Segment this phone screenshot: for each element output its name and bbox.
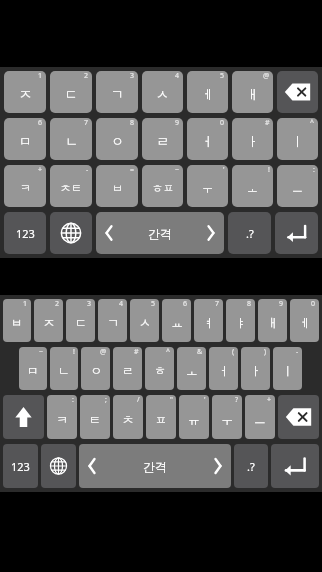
staticText: 3	[87, 299, 92, 309]
button[interactable]: !	[50, 347, 78, 390]
staticText: ㅗ	[247, 181, 258, 195]
staticText: #	[265, 118, 270, 128]
staticText: ㅎㅍ	[152, 181, 174, 195]
button[interactable]: "	[146, 395, 176, 439]
staticText: ㅅ	[139, 315, 151, 330]
staticText: !	[268, 165, 270, 175]
button[interactable]: .?	[228, 212, 271, 254]
button[interactable]: 2	[34, 299, 63, 342]
button[interactable]: !	[232, 165, 273, 207]
button[interactable]: ;	[80, 395, 110, 439]
staticText: ㄱ	[107, 315, 119, 330]
button[interactable]: =	[96, 165, 138, 207]
staticText: 1	[23, 299, 28, 309]
button[interactable]: 8	[226, 299, 255, 342]
staticText: '	[223, 165, 225, 175]
button[interactable]: 9	[142, 118, 183, 160]
button[interactable]: Enter	[271, 444, 319, 488]
button[interactable]: 5	[130, 299, 159, 342]
button[interactable]: ?	[212, 395, 242, 439]
button[interactable]: )	[241, 347, 270, 390]
staticText: ㅛ	[171, 315, 183, 330]
button[interactable]: 4	[142, 71, 183, 113]
staticText: ㅌ	[89, 412, 101, 427]
staticText: ㅏ	[246, 133, 259, 149]
staticText: 4	[119, 299, 124, 309]
staticText: ㅣ	[291, 133, 304, 149]
staticText: 9	[175, 118, 180, 128]
staticText: )	[264, 347, 267, 357]
staticText: 7	[215, 299, 220, 309]
button[interactable]: 1	[3, 299, 31, 342]
button[interactable]: 3	[96, 71, 138, 113]
button[interactable]: ^	[277, 118, 318, 160]
button[interactable]: -	[273, 347, 302, 390]
button[interactable]: -	[50, 165, 92, 207]
staticText: 8	[130, 118, 135, 128]
button[interactable]: 간격	[96, 212, 224, 254]
staticText: ㅓ	[218, 363, 230, 378]
button[interactable]: ~	[19, 347, 47, 390]
button[interactable]: 123	[3, 444, 38, 488]
button[interactable]: 4	[98, 299, 127, 342]
button[interactable]: :	[277, 165, 318, 207]
button[interactable]: :	[47, 395, 77, 439]
button[interactable]: ~	[142, 165, 183, 207]
staticText: 6	[38, 118, 43, 128]
button[interactable]: +	[4, 165, 46, 207]
button[interactable]: &	[177, 347, 206, 390]
staticText: /	[137, 395, 140, 405]
button[interactable]: ^	[145, 347, 174, 390]
staticText: #	[134, 347, 139, 357]
staticText: 123	[11, 459, 30, 474]
staticText: -	[296, 347, 299, 357]
staticText: ㄹ	[156, 133, 169, 149]
button[interactable]: .?	[234, 444, 268, 488]
button[interactable]: /	[113, 395, 143, 439]
button[interactable]: 0	[290, 299, 319, 342]
button[interactable]: 간격	[79, 444, 231, 488]
button[interactable]: 123	[4, 212, 46, 254]
button[interactable]: 7	[50, 118, 92, 160]
staticText: -	[86, 165, 89, 175]
button[interactable]: #	[232, 118, 273, 160]
staticText: ㅁ	[27, 363, 39, 378]
button[interactable]: #	[113, 347, 142, 390]
button[interactable]: 9	[258, 299, 287, 342]
button[interactable]: Backspace	[278, 395, 319, 439]
button[interactable]: 2	[50, 71, 92, 113]
button[interactable]: 7	[194, 299, 223, 342]
staticText: ㅊㅌ	[60, 181, 82, 195]
button[interactable]: Enter	[275, 212, 318, 254]
button[interactable]: @	[81, 347, 110, 390]
staticText: :	[72, 395, 74, 405]
staticText: ㅅ	[156, 86, 169, 102]
staticText: ㄷ	[65, 86, 78, 102]
button[interactable]: Shift	[3, 395, 44, 439]
button[interactable]: 0	[187, 118, 228, 160]
button[interactable]: 8	[96, 118, 138, 160]
staticText: 0	[311, 299, 316, 309]
button[interactable]: Change language	[50, 212, 92, 254]
staticText: ㅠ	[188, 412, 200, 427]
button[interactable]: 6	[4, 118, 46, 160]
button[interactable]: '	[179, 395, 209, 439]
staticText: ㅐ	[246, 86, 259, 102]
button[interactable]: 5	[187, 71, 228, 113]
staticText: ㄴ	[65, 133, 78, 149]
staticText: ㅈ	[19, 86, 32, 102]
button[interactable]: 3	[66, 299, 95, 342]
button[interactable]: (	[209, 347, 238, 390]
staticText: ㅐ	[267, 315, 279, 330]
staticText: 8	[247, 299, 252, 309]
button[interactable]: Change language	[41, 444, 76, 488]
button[interactable]: 6	[162, 299, 191, 342]
button[interactable]: @	[232, 71, 273, 113]
button[interactable]: 1	[4, 71, 46, 113]
button[interactable]: '	[187, 165, 228, 207]
button[interactable]: Backspace	[277, 71, 318, 113]
button[interactable]: +	[245, 395, 275, 439]
staticText: ㄷ	[75, 315, 87, 330]
staticText: 5	[220, 71, 225, 81]
staticText: ㅎ	[154, 363, 166, 378]
